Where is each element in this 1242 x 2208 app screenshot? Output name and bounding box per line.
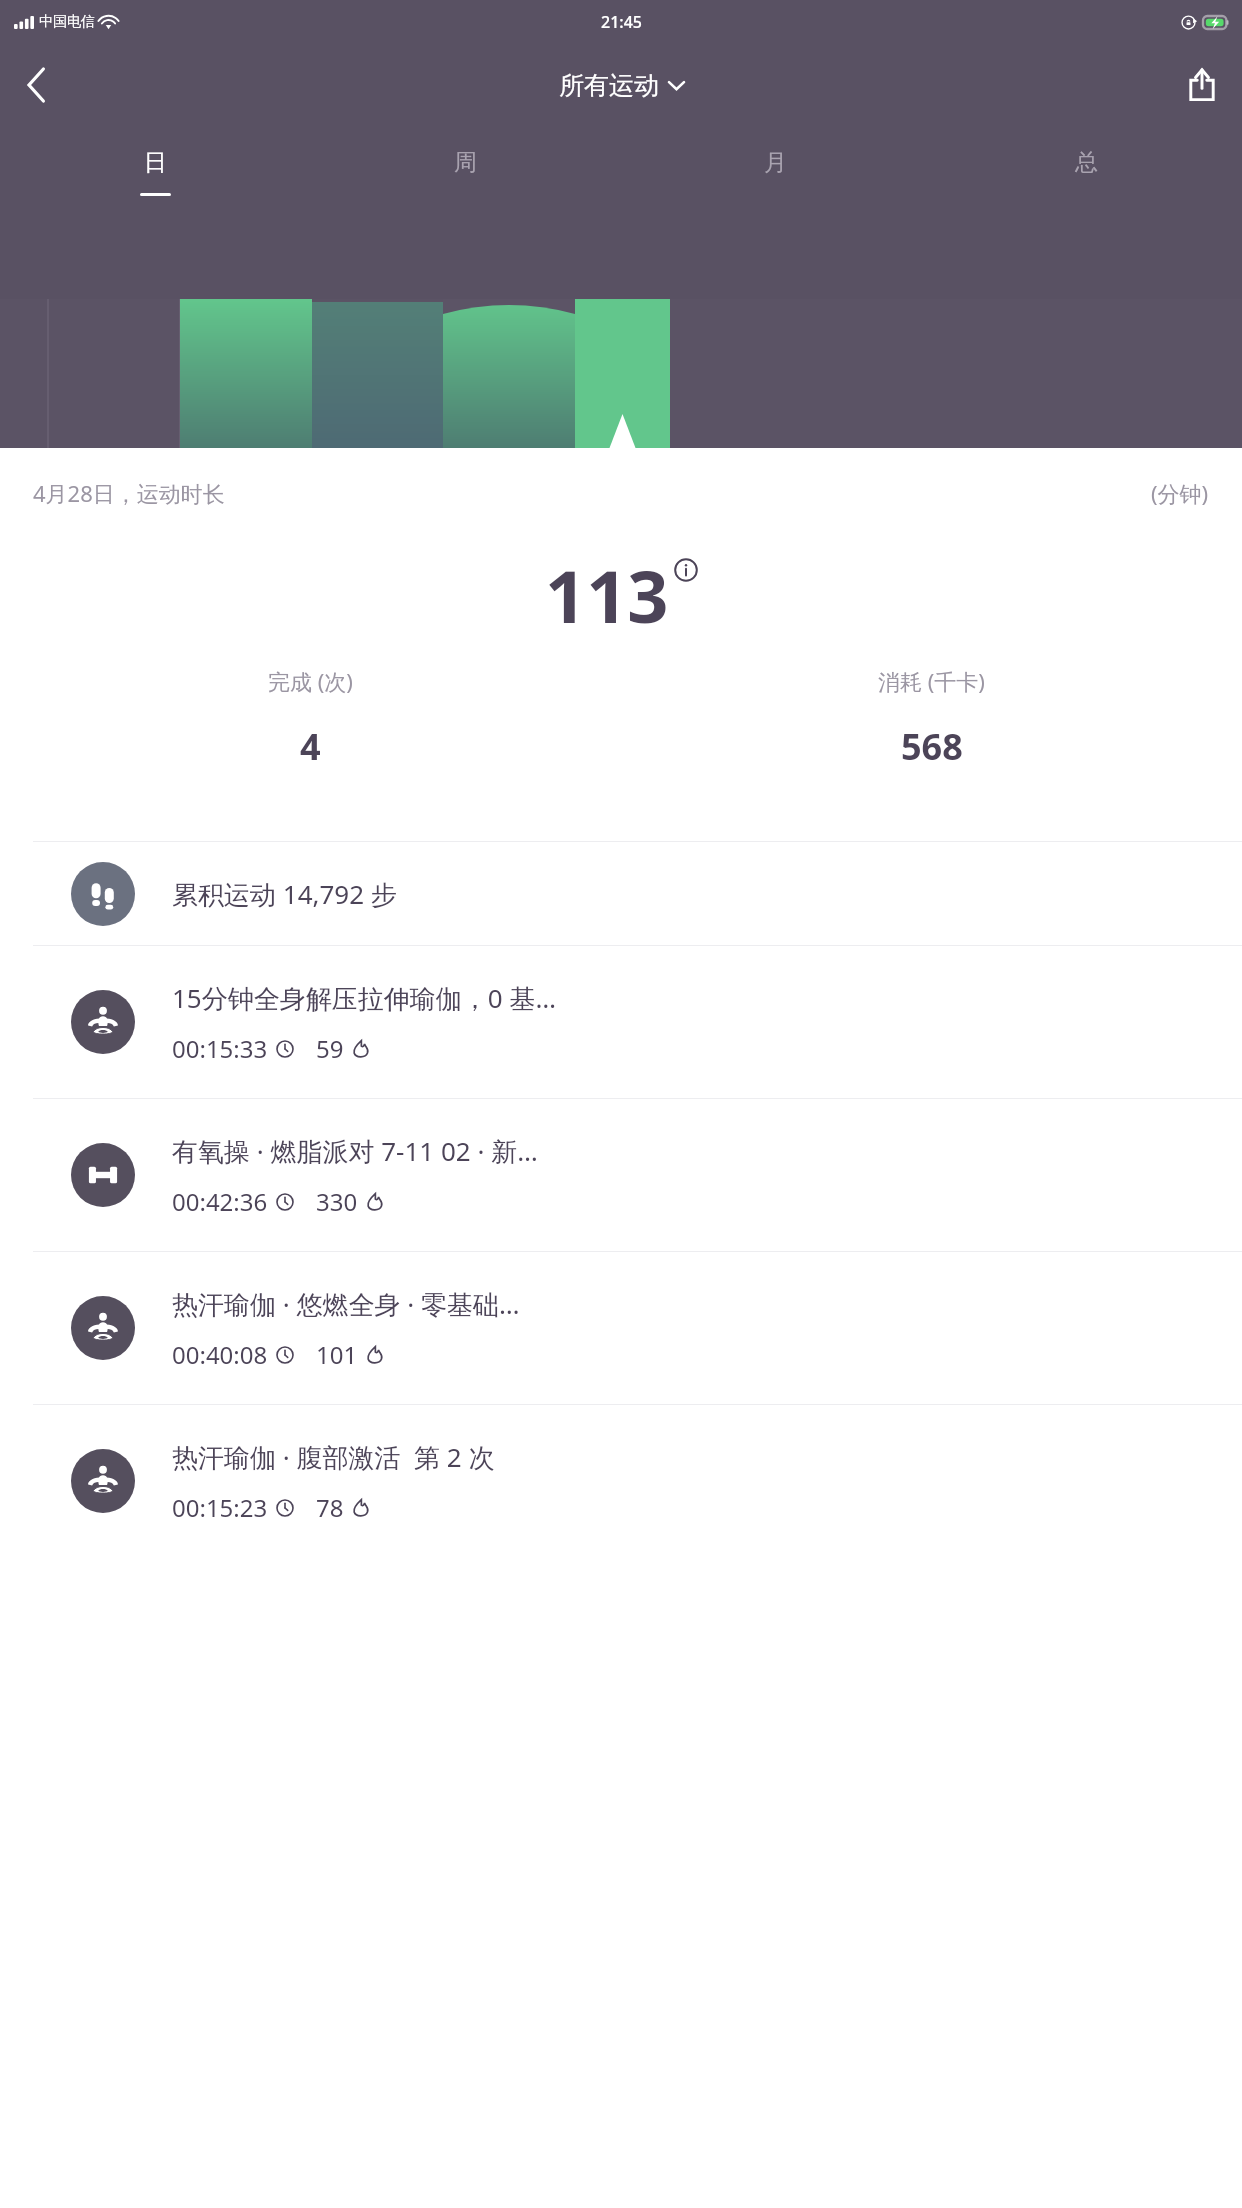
staticText: 59 xyxy=(316,1032,344,1065)
staticText: 00:15:33 xyxy=(172,1032,268,1065)
staticText: 00:40:08 xyxy=(172,1338,268,1371)
button[interactable]: 热汗瑜伽 · 腹部激活 第 2 次 xyxy=(0,1405,1242,1557)
staticText: 周 xyxy=(454,148,477,177)
staticText: 21:45 xyxy=(601,11,642,33)
button[interactable]: 总 xyxy=(931,126,1242,218)
button[interactable]: 日 xyxy=(0,126,310,218)
staticText: 113 xyxy=(545,546,669,644)
staticText: 78 xyxy=(316,1491,344,1524)
staticText: 消耗 (千卡) xyxy=(878,666,985,696)
button[interactable]: 周 xyxy=(310,126,620,218)
staticText: 完成 (次) xyxy=(268,666,353,696)
staticText: 热汗瑜伽 · 悠燃全身 · 零基础… xyxy=(172,1286,520,1322)
staticText: 15分钟全身解压拉伸瑜伽，0 基… xyxy=(172,980,556,1016)
staticText: 4月28日，运动时长 xyxy=(33,478,225,508)
staticText: 00:15:23 xyxy=(172,1491,268,1524)
staticText: 有氧操 · 燃脂派对 7-11 02 · 新… xyxy=(172,1133,538,1169)
staticText: (分钟) xyxy=(1151,478,1209,508)
button[interactable]: 月 xyxy=(620,126,931,218)
staticText: 所有运动 xyxy=(559,70,659,101)
staticText: 月 xyxy=(764,148,787,177)
button[interactable]: 完成 (次) xyxy=(0,666,621,771)
button[interactable]: Activity chart xyxy=(0,299,1242,448)
button[interactable]: Back xyxy=(8,56,66,114)
button[interactable]: 热汗瑜伽 · 悠燃全身 · 零基础… xyxy=(0,1252,1242,1404)
staticText: 中国电信 xyxy=(39,13,95,31)
staticText: 热汗瑜伽 · 腹部激活 第 2 次 xyxy=(172,1439,495,1475)
button[interactable]: 所有运动 xyxy=(559,70,684,101)
staticText: 00:42:36 xyxy=(172,1185,268,1218)
staticText: 568 xyxy=(901,722,963,771)
staticText: 日 xyxy=(144,148,167,177)
button[interactable]: 累积运动 14,792 步 xyxy=(0,842,1242,945)
button[interactable]: 消耗 (千卡) xyxy=(621,666,1242,771)
staticText: 101 xyxy=(316,1338,358,1371)
button[interactable]: Info xyxy=(674,558,698,582)
button[interactable]: Share xyxy=(1176,59,1228,111)
staticText: 累积运动 14,792 步 xyxy=(172,876,397,912)
button[interactable]: 有氧操 · 燃脂派对 7-11 02 · 新… xyxy=(0,1099,1242,1251)
staticText: 总 xyxy=(1075,148,1098,177)
staticText: 330 xyxy=(316,1185,358,1218)
button[interactable]: 15分钟全身解压拉伸瑜伽，0 基… xyxy=(0,946,1242,1098)
staticText: 4 xyxy=(300,722,321,771)
